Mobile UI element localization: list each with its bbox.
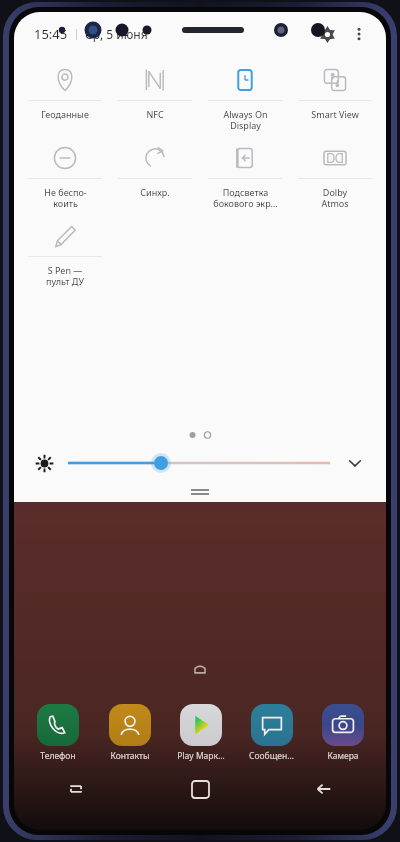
button[interactable]: Recents <box>14 772 138 806</box>
button[interactable]: Контакты <box>94 704 165 762</box>
button[interactable]: Play Марк… <box>165 704 236 762</box>
staticText: Контакты <box>110 750 150 762</box>
button[interactable]: Не беспо- коить <box>20 138 110 216</box>
staticText: Dolby Atmos <box>321 186 349 210</box>
button[interactable]: Подсветка бокового экр… <box>200 138 290 216</box>
staticText: NFC <box>146 108 164 120</box>
button[interactable]: Brightness <box>30 449 58 477</box>
button[interactable]: Back <box>262 772 386 806</box>
button[interactable]: Телефон <box>22 704 94 762</box>
staticText: Always On Display <box>223 108 268 132</box>
button[interactable]: Always On Display <box>200 60 290 138</box>
staticText: Подсветка бокового экр… <box>213 186 278 210</box>
button[interactable]: Сообщен… <box>236 704 307 762</box>
button[interactable]: Settings <box>310 17 344 51</box>
staticText: Ср, 5 июня <box>85 26 148 42</box>
button[interactable]: Dolby Atmos <box>290 138 380 216</box>
staticText: Play Марк… <box>177 750 225 762</box>
staticText: Геоданные <box>41 108 89 120</box>
staticText: Телефон <box>40 750 76 762</box>
button[interactable]: More options <box>344 19 374 49</box>
button[interactable]: S Pen — пульт ДУ <box>20 216 110 294</box>
button[interactable]: Home <box>138 772 262 806</box>
staticText: Сообщен… <box>249 750 294 762</box>
staticText: Не беспо- коить <box>44 186 87 210</box>
staticText: 15:45 <box>34 25 68 43</box>
button[interactable]: NFC <box>110 60 200 126</box>
button[interactable]: Геоданные <box>20 60 110 126</box>
button[interactable]: Синхр. <box>110 138 200 204</box>
button[interactable] <box>68 449 330 477</box>
staticText: Синхр. <box>140 186 170 198</box>
staticText: Камера <box>327 750 359 762</box>
button[interactable]: Smart View <box>290 60 380 126</box>
staticText: S Pen — пульт ДУ <box>46 264 84 288</box>
staticText: Smart View <box>311 108 359 120</box>
button[interactable]: Expand brightness settings <box>340 448 370 478</box>
button[interactable]: Камера <box>307 704 378 762</box>
